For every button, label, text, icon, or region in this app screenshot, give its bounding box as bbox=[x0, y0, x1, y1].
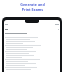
staticText: Generate and Print Exams bbox=[20, 2, 45, 12]
